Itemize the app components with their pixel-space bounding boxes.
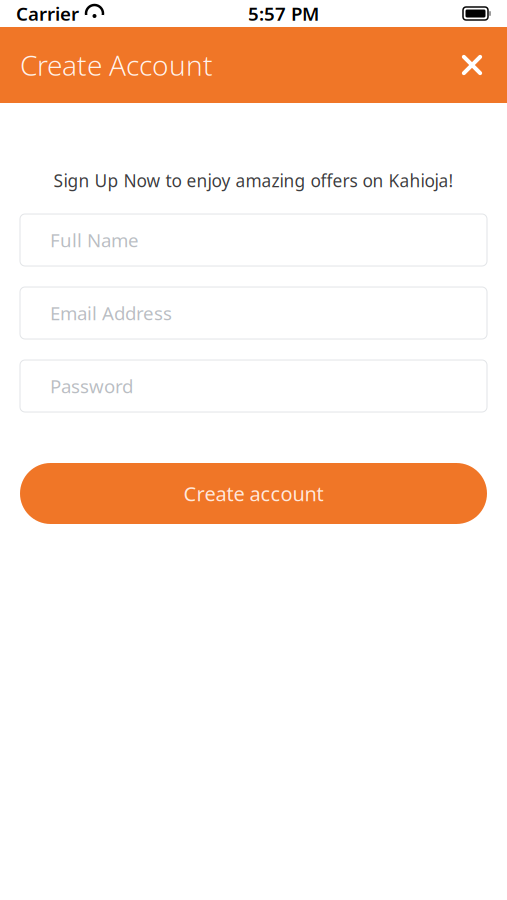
staticText: Sign Up Now to enjoy amazing offers on K…: [53, 169, 453, 192]
staticText: Email Address: [50, 301, 172, 325]
staticText: Password: [50, 374, 133, 398]
button[interactable]: Create account: [20, 463, 487, 524]
staticText: Create account: [183, 480, 323, 507]
staticText: Full Name: [50, 228, 139, 252]
staticText: 5:57 PM: [248, 1, 319, 26]
button[interactable]: Close: [450, 43, 494, 87]
staticText: Carrier: [16, 1, 79, 26]
staticText: Create Account: [20, 46, 213, 84]
